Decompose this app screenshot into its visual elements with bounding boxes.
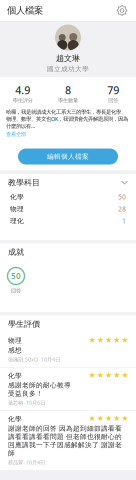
- staticText: 教學科目: [8, 178, 40, 187]
- staticText: 謝謝老師的回答 因為超到細節講看看講看看講看看問題 但老師也很耐心的回應講我一下…: [8, 425, 122, 457]
- staticText: 學生評分: [13, 97, 33, 104]
- staticText: 個人檔案: [7, 5, 43, 16]
- staticText: 回答: [11, 287, 21, 294]
- staticText: 趙文琳: [56, 53, 80, 63]
- staticText: 50: [11, 271, 21, 281]
- staticText: 28: [118, 205, 126, 213]
- staticText: 成就: [8, 247, 24, 257]
- staticText: 查看全部: [6, 131, 26, 137]
- staticText: 50: [118, 193, 126, 201]
- staticText: 哈囉，我是就讀成大化工系大三的學生，專長是化學、物理、數學、英文也OK，我習慣會…: [6, 109, 128, 129]
- staticText: 感謝老師的耐心教導 受益良多！: [8, 381, 71, 398]
- staticText: 物理: [10, 205, 24, 213]
- staticText: 葉芯榕 · 10月6日: [8, 399, 45, 406]
- staticText: 1: [122, 217, 126, 225]
- staticText: 理化: [10, 217, 24, 225]
- staticText: 學生數量: [58, 97, 78, 104]
- staticText: 蔡品萱 · 10月4日: [8, 459, 45, 466]
- button[interactable]: 編輯個人檔案: [18, 148, 118, 164]
- staticText: 感想: [8, 346, 22, 354]
- staticText: 4.9: [15, 83, 30, 97]
- staticText: 學生評價: [8, 319, 40, 329]
- button[interactable]: 教學科目: [0, 174, 136, 191]
- staticText: 回答: [108, 97, 118, 104]
- staticText: 化學: [8, 415, 22, 423]
- button[interactable]: Settings: [115, 3, 129, 17]
- staticText: 張珮琪_S0xO · 10月4日: [8, 356, 60, 363]
- staticText: 化學: [8, 372, 22, 380]
- staticText: 編輯個人檔案: [47, 152, 89, 161]
- staticText: 79: [107, 83, 119, 97]
- staticText: 國立成功大學: [47, 65, 89, 73]
- staticText: 8: [65, 83, 71, 97]
- staticText: 物理: [8, 337, 22, 345]
- button[interactable]: 查看全部: [0, 129, 136, 137]
- staticText: 化學: [10, 193, 24, 201]
